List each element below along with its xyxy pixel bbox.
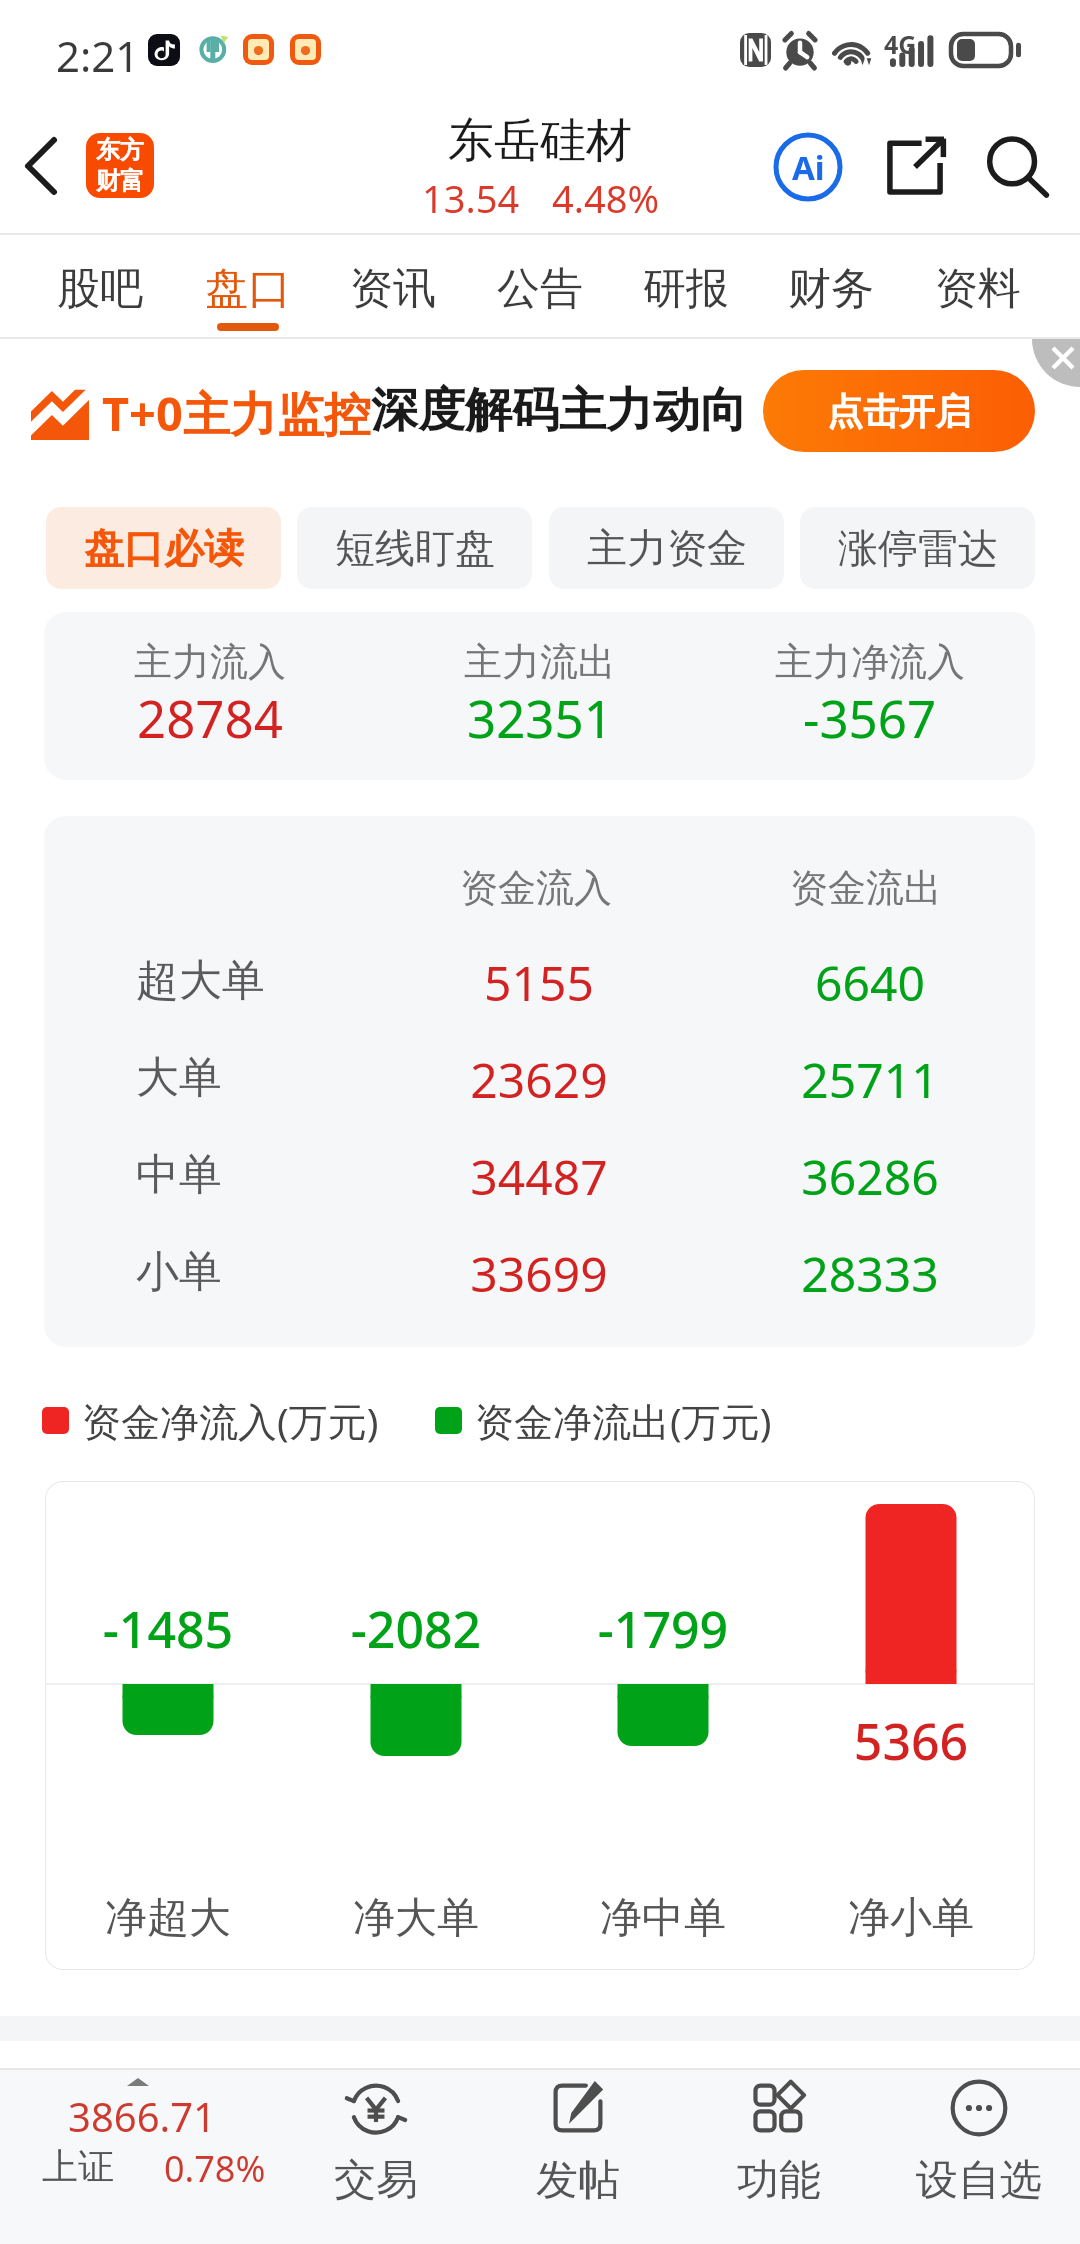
staticText: 净大单 [306, 1892, 526, 1945]
staticText: 2:21 [56, 27, 140, 84]
button[interactable]: 交易 [284, 2068, 468, 2244]
staticText: 净超大 [58, 1892, 278, 1945]
staticText: Ai [792, 145, 825, 190]
button[interactable]: Close banner [1032, 339, 1080, 388]
staticText: 资金流出 [790, 864, 942, 912]
staticText: 主力净流入 [775, 638, 965, 686]
staticText: 4.48% [552, 172, 659, 224]
button[interactable]: 发帖 [486, 2068, 670, 2244]
staticText: 32351 [467, 683, 613, 752]
staticText: 资金流入 [460, 864, 612, 912]
staticText: 3866.71 [68, 2089, 216, 2143]
staticText: 0.78% [164, 2144, 266, 2193]
staticText: 发帖 [536, 2154, 620, 2207]
staticText: 资金净流入(万元) [82, 1394, 379, 1447]
button[interactable]: Share [882, 134, 948, 200]
staticText: 超大单 [136, 954, 265, 1008]
staticText: 深度解码主力动向 [371, 381, 747, 440]
staticText: 财富 [96, 166, 144, 196]
staticText: 股吧 [57, 262, 143, 316]
button[interactable]: 盘口必读 [46, 507, 281, 589]
staticText: 23629 [413, 1047, 665, 1112]
staticText: 33699 [413, 1241, 665, 1306]
staticText: 涨停雷达 [838, 523, 998, 573]
button[interactable]: 东方 [86, 133, 154, 198]
button[interactable]: Back [3, 128, 79, 204]
staticText: 36286 [744, 1144, 996, 1209]
button[interactable]: 主力资金 [549, 507, 784, 589]
button[interactable]: AI assistant [773, 132, 843, 202]
staticText: 大单 [136, 1051, 222, 1105]
staticText: 研报 [643, 262, 729, 316]
button[interactable]: 设自选 [887, 2068, 1071, 2244]
staticText: -3567 [803, 683, 937, 752]
staticText: 盘口 [205, 262, 291, 316]
staticText: 短线盯盘 [335, 523, 495, 573]
staticText: 功能 [737, 2154, 821, 2207]
button[interactable]: Search [982, 132, 1052, 202]
staticText: 净小单 [801, 1892, 1021, 1945]
button[interactable]: 点击开启 [763, 370, 1035, 452]
staticText: 主力流入 [134, 638, 286, 686]
staticText: 东方 [96, 135, 144, 165]
staticText: 6640 [744, 950, 996, 1015]
button[interactable]: 短线盯盘 [297, 507, 532, 589]
staticText: -1485 [58, 1595, 278, 1663]
staticText: 公告 [497, 262, 583, 316]
staticText: 点击开启 [827, 389, 971, 434]
staticText: -2082 [306, 1595, 526, 1663]
staticText: 5155 [413, 950, 665, 1015]
staticText: 13.54 [422, 172, 520, 224]
staticText: 财务 [788, 262, 874, 316]
staticText: 交易 [334, 2154, 418, 2207]
button[interactable]: 公告 [475, 243, 605, 337]
staticText: 25711 [744, 1047, 996, 1112]
staticText: 资讯 [350, 262, 436, 316]
staticText: 盘口必读 [84, 523, 244, 573]
button[interactable]: 功能 [687, 2068, 871, 2244]
staticText: 净中单 [553, 1892, 773, 1945]
staticText: 资金净流出(万元) [475, 1394, 772, 1447]
button[interactable]: 涨停雷达 [800, 507, 1035, 589]
button[interactable]: 股吧 [35, 243, 165, 337]
button[interactable]: 财务 [766, 243, 896, 337]
staticText: 资料 [935, 262, 1021, 316]
staticText: 28333 [744, 1241, 996, 1306]
button[interactable]: 研报 [621, 243, 751, 337]
staticText: 上证 [42, 2144, 114, 2189]
staticText: 小单 [136, 1245, 222, 1299]
button[interactable]: 盘口 [183, 243, 313, 337]
staticText: 主力流出 [464, 638, 616, 686]
staticText: 设自选 [916, 2154, 1042, 2207]
button[interactable]: 资料 [913, 243, 1043, 337]
staticText: 东岳硅材 [448, 112, 632, 170]
staticText: 28784 [137, 683, 283, 752]
staticText: -1799 [553, 1595, 773, 1663]
button[interactable]: 3866.71 [10, 2068, 310, 2244]
staticText: 5366 [801, 1707, 1021, 1775]
staticText: 4G [884, 27, 917, 61]
staticText: 34487 [413, 1144, 665, 1209]
staticText: T+0主力监控 [102, 381, 371, 445]
staticText: 主力资金 [587, 523, 747, 573]
button[interactable]: 资讯 [328, 243, 458, 337]
staticText: 中单 [136, 1148, 222, 1202]
